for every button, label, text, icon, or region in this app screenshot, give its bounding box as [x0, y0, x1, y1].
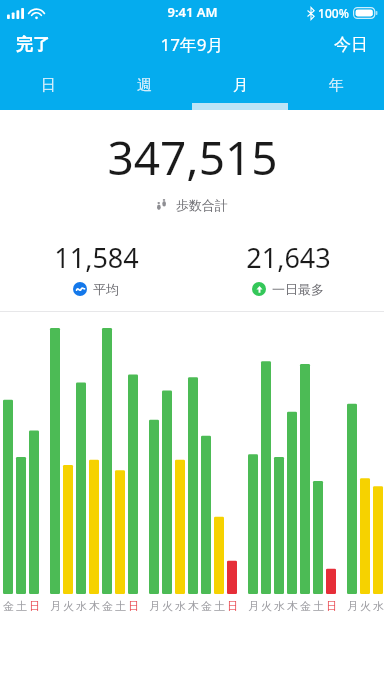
staticText: 火 [261, 599, 272, 613]
staticText: 木 [89, 599, 100, 613]
staticText: 水 [373, 599, 384, 613]
staticText: 金 [102, 599, 113, 613]
staticText: 完了 [16, 34, 50, 55]
other: Bluetooth [307, 7, 315, 20]
staticText: 11,584 [54, 239, 139, 276]
other: Battery 100 percent [353, 7, 379, 19]
staticText: 週 [137, 76, 152, 95]
staticText: 土 [313, 599, 324, 613]
staticText: 水 [175, 599, 186, 613]
staticText: 日 [29, 599, 40, 613]
staticText: 火 [162, 599, 173, 613]
staticText: 平均 [93, 281, 119, 297]
staticText: 日 [227, 599, 238, 613]
staticText: 日 [326, 599, 337, 613]
button[interactable]: 11,584 [0, 239, 192, 297]
staticText: 土 [214, 599, 225, 613]
staticText: 木 [188, 599, 199, 613]
button[interactable]: 今日 [318, 27, 384, 62]
other: Cellular signal [7, 8, 24, 19]
button[interactable]: 年 [288, 62, 384, 110]
staticText: 今日 [334, 34, 368, 55]
button[interactable]: 週 [96, 62, 192, 110]
staticText: 火 [360, 599, 371, 613]
staticText: 歩数合計 [176, 197, 228, 213]
staticText: 17年9月 [160, 33, 224, 56]
staticText: 金 [3, 599, 14, 613]
staticText: 日 [128, 599, 139, 613]
staticText: 月 [347, 599, 358, 613]
button[interactable]: 21,643 [192, 239, 384, 297]
staticText: 一日最多 [272, 281, 324, 297]
staticText: 土 [16, 599, 27, 613]
button[interactable]: 金 [0, 312, 384, 683]
staticText: 月 [149, 599, 160, 613]
staticText: 9:41 AM [167, 3, 218, 21]
staticText: 21,643 [246, 239, 331, 276]
staticText: 金 [201, 599, 212, 613]
staticText: 100% [318, 5, 349, 21]
button[interactable]: 月 [192, 62, 288, 110]
staticText: 火 [63, 599, 74, 613]
staticText: 月 [50, 599, 61, 613]
staticText: 月 [248, 599, 259, 613]
staticText: 木 [287, 599, 298, 613]
staticText: 347,515 [107, 126, 278, 189]
staticText: 水 [76, 599, 87, 613]
staticText: 月 [233, 76, 248, 95]
staticText: 日 [41, 76, 56, 95]
staticText: 金 [300, 599, 311, 613]
staticText: 水 [274, 599, 285, 613]
staticText: 年 [329, 76, 344, 95]
staticText: 土 [115, 599, 126, 613]
other: Wi-Fi [29, 8, 44, 19]
button[interactable]: 日 [0, 62, 96, 110]
button[interactable]: 完了 [0, 27, 66, 62]
